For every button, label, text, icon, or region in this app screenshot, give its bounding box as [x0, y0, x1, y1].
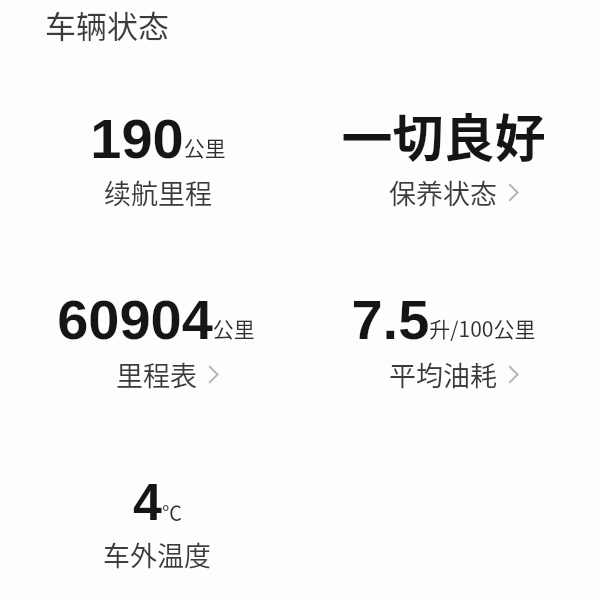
staticText: 4℃	[133, 473, 182, 531]
button[interactable]: 车辆状态	[45, 2, 169, 47]
button[interactable]: 续航里程 190公里	[8, 107, 308, 209]
button[interactable]: 保养状态 一切良好	[293, 98, 593, 209]
staticText: 7.5升/100公里	[351, 288, 536, 351]
staticText: 一切良好	[341, 98, 546, 172]
staticText: 里程表	[116, 355, 197, 394]
staticText: 60904公里	[57, 288, 255, 351]
staticText: 平均油耗	[389, 355, 497, 394]
staticText: 保养状态	[389, 173, 497, 212]
button[interactable]: 平均油耗 7.5升/100公里	[293, 288, 593, 391]
button[interactable]: 车外温度 4℃	[7, 473, 307, 571]
button[interactable]: 里程表 60904公里	[6, 288, 306, 391]
staticText: 190公里	[90, 107, 226, 170]
staticText: 车外温度	[103, 535, 211, 574]
staticText: 续航里程	[104, 173, 212, 212]
